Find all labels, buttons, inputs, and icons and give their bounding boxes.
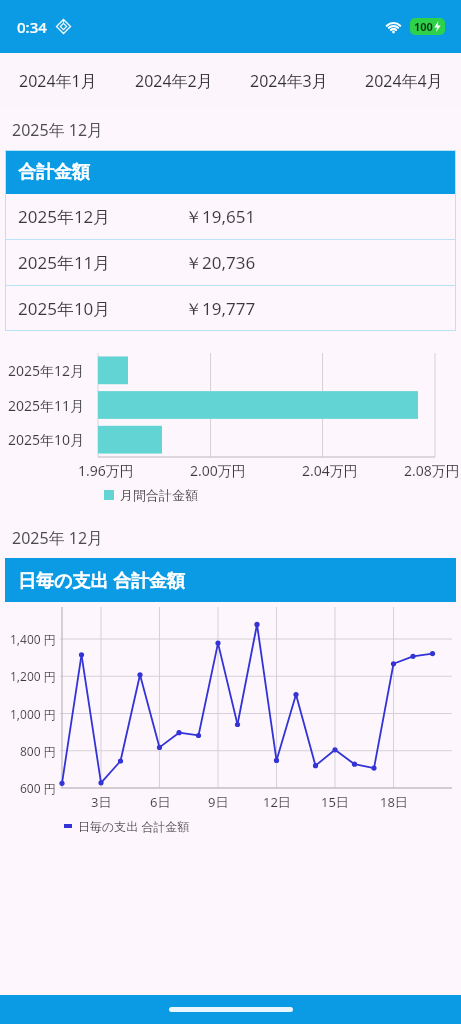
button[interactable]: 日毎の支出 合計金額 (5, 558, 456, 602)
staticText: 2025年12月 (18, 205, 111, 228)
button[interactable]: 2025年10月 (5, 286, 456, 331)
button[interactable]: 2024年2月 (116, 53, 231, 108)
staticText: ￥19,651 (185, 205, 256, 228)
staticText: 1,000 円 (10, 706, 56, 722)
staticText: 1,400 円 (10, 631, 56, 647)
staticText: 12日 (263, 793, 291, 811)
staticText: 2025年10月 (8, 430, 85, 449)
button[interactable]: 2025年12月 (5, 194, 456, 239)
button[interactable]: 2024年3月 (231, 53, 346, 108)
staticText: 2025年12月 (8, 361, 85, 380)
staticText: 18日 (380, 793, 408, 811)
button[interactable]: 2025年11月 (5, 240, 456, 285)
staticText: 2.08万円 (404, 461, 460, 480)
staticText: 15日 (321, 793, 349, 811)
staticText: 2025年 12月 (12, 527, 104, 549)
staticText: 2.04万円 (302, 461, 358, 480)
staticText: 日毎の支出 合計金額 (78, 818, 190, 834)
other: Home gesture (169, 1007, 293, 1012)
staticText: 2025年 12月 (12, 119, 104, 141)
staticText: 0:34 (17, 17, 47, 37)
staticText: 2024年4月 (365, 70, 443, 92)
staticText: 日毎の支出 合計金額 (18, 568, 186, 593)
staticText: 800 円 (20, 743, 56, 759)
staticText: 600 円 (20, 780, 56, 796)
staticText: 100 (414, 19, 433, 34)
staticText: 1.96万円 (78, 461, 134, 480)
staticText: 2024年1月 (19, 70, 97, 92)
staticText: 6日 (150, 793, 171, 811)
button[interactable]: 2024年4月 (346, 53, 461, 108)
staticText: 合計金額 (18, 161, 90, 184)
staticText: 2.00万円 (190, 461, 246, 480)
staticText: 2025年11月 (18, 251, 111, 274)
staticText: 1,200 円 (10, 668, 56, 684)
staticText: 2025年11月 (8, 396, 85, 415)
staticText: 2025年10月 (18, 297, 111, 320)
staticText: 月間合計金額 (120, 487, 198, 503)
staticText: 2024年3月 (250, 70, 328, 92)
staticText: ￥20,736 (185, 251, 256, 274)
staticText: 9日 (208, 793, 229, 811)
staticText: ￥19,777 (185, 297, 256, 320)
staticText: 3日 (91, 793, 112, 811)
button[interactable]: 2024年1月 (0, 53, 116, 108)
staticText: 2024年2月 (135, 70, 213, 92)
